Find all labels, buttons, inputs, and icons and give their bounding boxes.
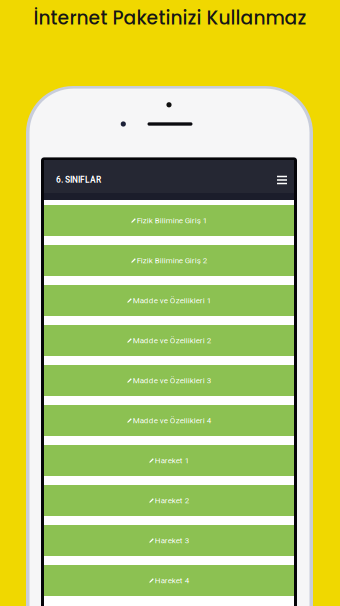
staticText: Madde ve Özellikleri 3 xyxy=(133,376,211,385)
button[interactable]: Madde ve Özellikleri 3 xyxy=(44,365,294,396)
staticText: Hareket 3 xyxy=(155,536,189,545)
staticText: Fizik Bilimine Giriş 1 xyxy=(137,216,207,225)
staticText: Madde ve Özellikleri 2 xyxy=(133,336,211,345)
button[interactable]: Fizik Bilimine Giriş 2 xyxy=(44,245,294,276)
staticText: Hareket 4 xyxy=(155,576,189,585)
button[interactable]: Hareket 2 xyxy=(44,485,294,516)
staticText: Madde ve Özellikleri 4 xyxy=(133,416,211,425)
button[interactable]: Madde ve Özellikleri 4 xyxy=(44,405,294,436)
button[interactable]: Fizik Bilimine Giriş 1 xyxy=(44,205,294,236)
staticText: İnternet Paketinizi Kullanmaz xyxy=(33,5,306,31)
staticText: Hareket 1 xyxy=(155,456,189,465)
button[interactable]: Madde ve Özellikleri 1 xyxy=(44,285,294,316)
staticText: Madde ve Özellikleri 1 xyxy=(133,296,211,305)
button[interactable]: Madde ve Özellikleri 2 xyxy=(44,325,294,356)
button[interactable]: Hareket 4 xyxy=(44,565,294,596)
staticText: Fizik Bilimine Giriş 2 xyxy=(137,256,207,265)
button[interactable]: Hareket 3 xyxy=(44,525,294,556)
staticText: Hareket 2 xyxy=(155,496,189,505)
button[interactable]: Menu xyxy=(277,175,287,185)
button[interactable]: Hareket 1 xyxy=(44,445,294,476)
staticText: 6. SINIFLAR xyxy=(56,175,101,185)
